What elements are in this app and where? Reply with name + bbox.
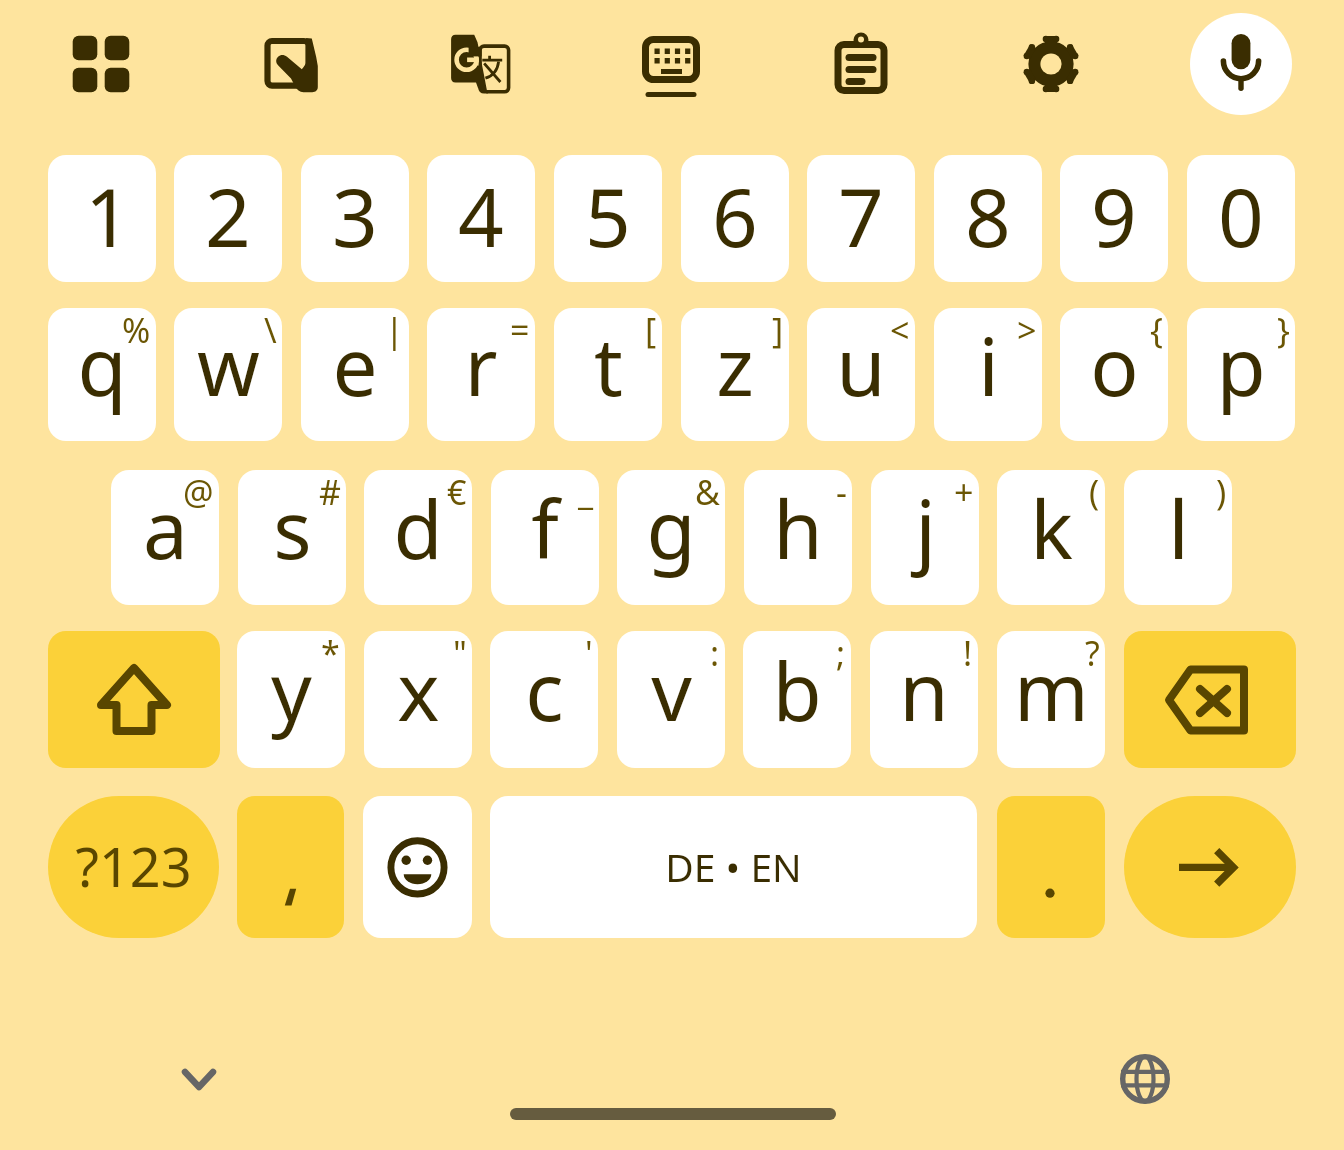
staticText: =: [510, 308, 530, 353]
staticText: ": [453, 631, 467, 676]
button[interactable]: Comma: [237, 796, 344, 938]
staticText: 3: [332, 161, 378, 270]
button[interactable]: a: [111, 470, 219, 605]
button[interactable]: b: [743, 631, 851, 768]
button[interactable]: Emoji: [363, 796, 472, 938]
button[interactable]: 2: [174, 155, 282, 282]
button[interactable]: Translate: [433, 16, 529, 112]
staticText: k: [1030, 473, 1073, 582]
button[interactable]: c: [490, 631, 598, 768]
staticText: h: [773, 473, 823, 582]
button[interactable]: u: [807, 308, 915, 441]
staticText: DE • EN: [665, 840, 802, 893]
staticText: 6: [712, 161, 758, 270]
button[interactable]: 6: [681, 155, 789, 282]
staticText: >: [1017, 308, 1037, 353]
staticText: p: [1216, 310, 1266, 419]
staticText: ?: [1085, 631, 1100, 676]
staticText: n: [899, 635, 949, 744]
button[interactable]: Hide keyboard: [155, 1036, 243, 1124]
button[interactable]: Enter: [1124, 796, 1296, 938]
staticText: 5: [585, 161, 631, 270]
button[interactable]: i: [934, 308, 1042, 441]
staticText: l: [1168, 473, 1189, 582]
button[interactable]: n: [870, 631, 978, 768]
staticText: t: [594, 310, 623, 419]
button[interactable]: z: [681, 308, 789, 441]
button[interactable]: DE • EN: [490, 796, 977, 938]
staticText: g: [646, 473, 696, 582]
staticText: c: [525, 635, 564, 744]
staticText: 1: [85, 161, 131, 270]
staticText: 4: [458, 161, 504, 270]
staticText: @: [183, 470, 214, 515]
button[interactable]: Settings: [1003, 16, 1099, 112]
button[interactable]: Change language: [1101, 1035, 1189, 1123]
button[interactable]: Clipboard: [813, 15, 909, 111]
staticText: #: [319, 470, 341, 515]
button[interactable]: y: [237, 631, 345, 768]
staticText: o: [1090, 310, 1139, 419]
staticText: {: [1150, 308, 1163, 353]
staticText: ': [585, 631, 593, 676]
button[interactable]: j: [871, 470, 979, 605]
button[interactable]: s: [238, 470, 346, 605]
button[interactable]: w: [174, 308, 282, 441]
button[interactable]: 1: [48, 155, 156, 282]
staticText: ]: [772, 308, 784, 353]
staticText: !: [963, 631, 973, 676]
button[interactable]: 5: [554, 155, 662, 282]
staticText: v: [651, 635, 692, 744]
staticText: 2: [205, 161, 251, 270]
button[interactable]: 8: [934, 155, 1042, 282]
button[interactable]: Period: [997, 796, 1105, 938]
button[interactable]: m: [997, 631, 1105, 768]
button[interactable]: Handwriting: [243, 16, 339, 112]
button[interactable]: Keyboard modes: [623, 16, 719, 112]
staticText: \: [264, 308, 277, 353]
staticText: }: [1277, 308, 1290, 353]
staticText: j: [915, 473, 936, 582]
button[interactable]: 7: [807, 155, 915, 282]
staticText: (: [1089, 470, 1100, 515]
staticText: z: [716, 310, 754, 419]
button[interactable]: 0: [1187, 155, 1295, 282]
button[interactable]: t: [554, 308, 662, 441]
button[interactable]: g: [617, 470, 725, 605]
button[interactable]: Voice input: [1190, 13, 1292, 115]
staticText: [: [645, 308, 657, 353]
button[interactable]: 3: [301, 155, 409, 282]
button[interactable]: e: [301, 308, 409, 441]
staticText: u: [836, 310, 886, 419]
staticText: m: [1014, 635, 1089, 744]
button[interactable]: 9: [1060, 155, 1168, 282]
button[interactable]: k: [997, 470, 1105, 605]
button[interactable]: Backspace: [1124, 631, 1296, 768]
button[interactable]: o: [1060, 308, 1168, 441]
staticText: 7: [838, 161, 884, 270]
button[interactable]: v: [617, 631, 725, 768]
staticText: q: [77, 310, 127, 419]
staticText: &: [695, 470, 720, 515]
button[interactable]: h: [744, 470, 852, 605]
button[interactable]: Shift: [48, 631, 220, 768]
button[interactable]: ?123: [48, 796, 219, 938]
button[interactable]: x: [364, 631, 472, 768]
button[interactable]: f: [491, 470, 599, 605]
staticText: b: [772, 635, 822, 744]
staticText: %: [122, 308, 151, 353]
staticText: w: [197, 310, 260, 419]
button[interactable]: d: [364, 470, 472, 605]
staticText: :: [710, 631, 720, 676]
staticText: ?123: [75, 829, 192, 903]
button[interactable]: q: [48, 308, 156, 441]
button[interactable]: 4: [427, 155, 535, 282]
button[interactable]: Apps: [53, 16, 149, 112]
staticText: s: [273, 473, 312, 582]
button[interactable]: l: [1124, 470, 1232, 605]
staticText: ): [1216, 470, 1227, 515]
button[interactable]: r: [427, 308, 535, 441]
button[interactable]: p: [1187, 308, 1295, 441]
staticText: a: [143, 473, 188, 582]
staticText: ;: [836, 631, 846, 676]
